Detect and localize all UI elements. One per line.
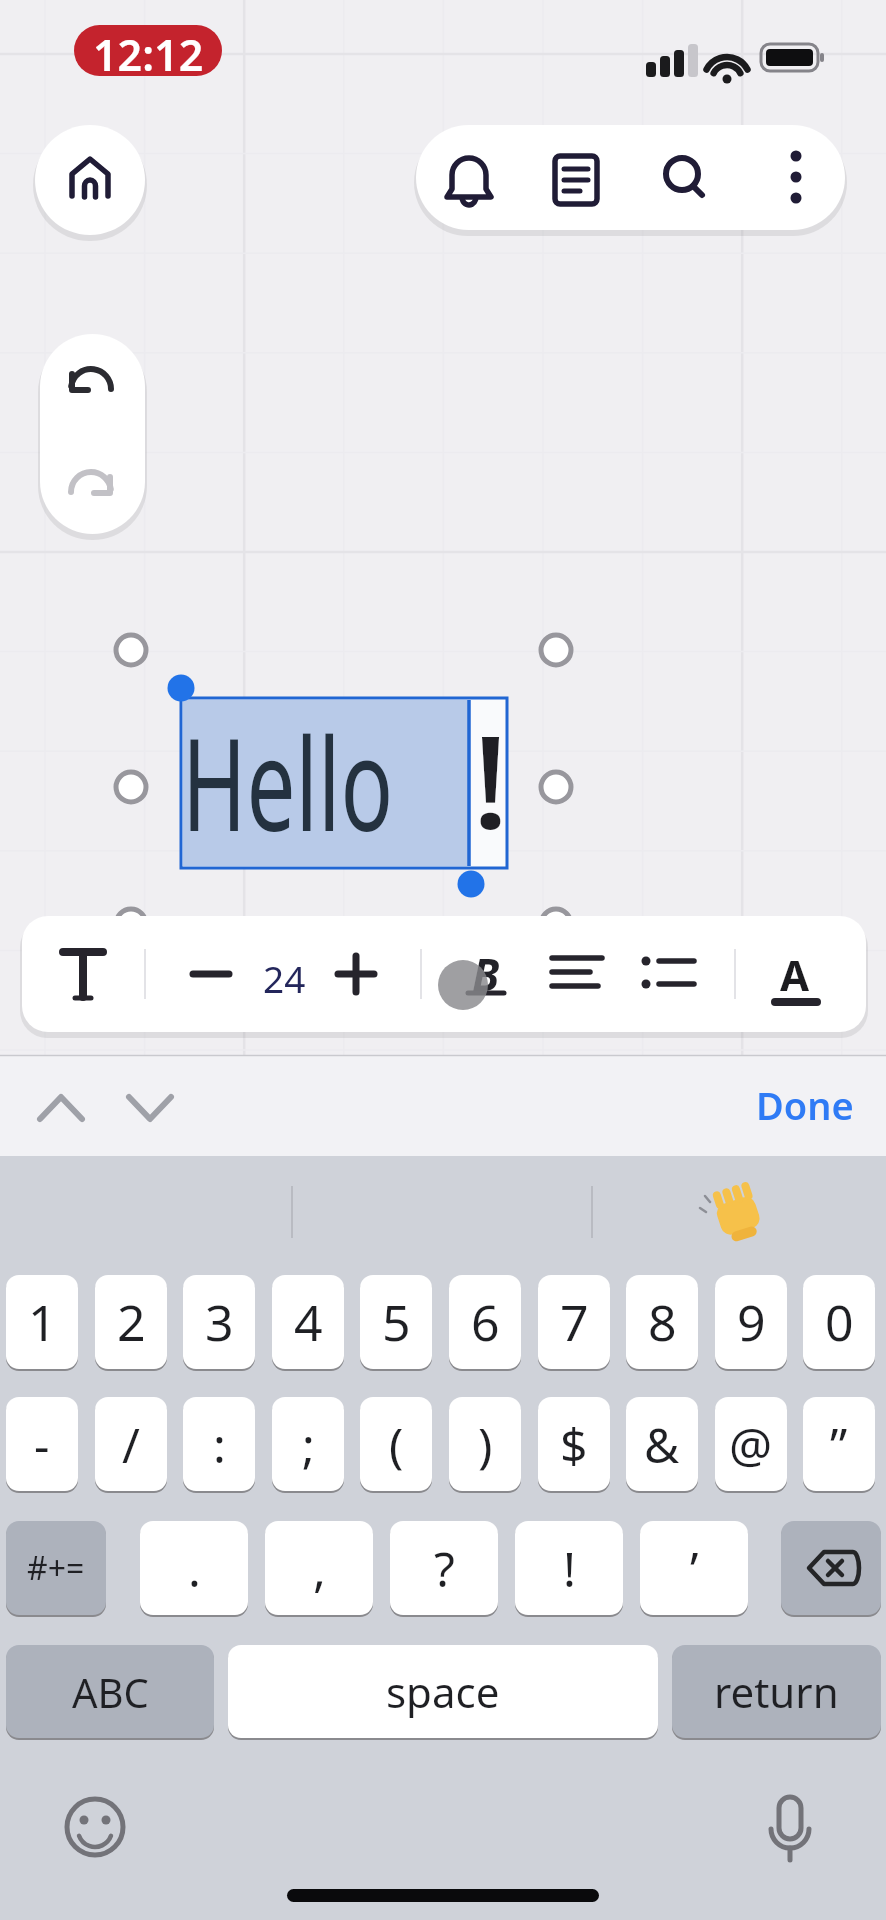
button[interactable] [630, 125, 737, 230]
staticText: ! [563, 1536, 576, 1601]
button[interactable]: 3 [183, 1275, 255, 1369]
button[interactable] [316, 924, 396, 1024]
button[interactable] [781, 1521, 881, 1615]
button[interactable]: 7 [538, 1275, 610, 1369]
button[interactable]: ) [449, 1397, 521, 1491]
button[interactable]: 8 [626, 1275, 698, 1369]
staticText: @ [729, 1412, 773, 1477]
button[interactable] [628, 924, 708, 1024]
staticText: Hello [182, 694, 393, 868]
staticText: 0 [825, 1288, 854, 1356]
button[interactable]: ’ [640, 1521, 748, 1615]
staticText: & [644, 1412, 680, 1477]
button[interactable] [43, 924, 123, 1024]
button[interactable]: 1 [6, 1275, 78, 1369]
button[interactable]: #+= [6, 1521, 106, 1615]
staticText: ’ [690, 1536, 699, 1601]
staticText: #+= [27, 1546, 85, 1590]
staticText: A [780, 946, 810, 1003]
staticText: : [213, 1412, 226, 1477]
staticText: B [472, 944, 500, 1004]
button[interactable] [110, 1065, 195, 1145]
staticText: ) [478, 1412, 493, 1477]
staticText: ” [830, 1412, 848, 1477]
button[interactable]: - [6, 1397, 78, 1491]
staticText: 2 [117, 1288, 146, 1356]
button[interactable]: space [228, 1645, 658, 1738]
staticText: 3 [205, 1288, 234, 1356]
staticText: 6 [471, 1288, 500, 1356]
button[interactable]: 9 [715, 1275, 787, 1369]
button[interactable]: 2 [95, 1275, 167, 1369]
staticText: 4 [294, 1288, 323, 1356]
staticText: 7 [560, 1288, 589, 1356]
button[interactable] [20, 1065, 105, 1145]
button[interactable] [171, 924, 251, 1024]
staticText: ( [389, 1412, 404, 1477]
staticText: 8 [648, 1288, 677, 1356]
staticText: , [313, 1536, 326, 1601]
button[interactable]: 5 [360, 1275, 432, 1369]
button[interactable]: $ [538, 1397, 610, 1491]
staticText: . [188, 1536, 201, 1601]
staticText: ; [302, 1412, 315, 1477]
button[interactable] [40, 434, 145, 534]
button[interactable]: / [95, 1397, 167, 1491]
button[interactable] [523, 125, 630, 230]
button[interactable]: Done [740, 1065, 870, 1145]
button[interactable] [537, 924, 617, 1024]
button[interactable] [757, 924, 837, 1024]
staticText: / [122, 1412, 140, 1477]
staticText: 9 [737, 1288, 766, 1356]
staticText: 12:12 [93, 25, 204, 76]
button[interactable] [737, 125, 844, 230]
staticText: 5 [382, 1288, 411, 1356]
button[interactable]: 4 [272, 1275, 344, 1369]
button[interactable]: @ [715, 1397, 787, 1491]
staticText: - [34, 1412, 50, 1477]
staticText: ? [434, 1536, 455, 1601]
button[interactable]: 0 [803, 1275, 875, 1369]
button[interactable]: ; [272, 1397, 344, 1491]
button[interactable] [750, 1787, 830, 1867]
button[interactable]: ? [390, 1521, 498, 1615]
button[interactable]: : [183, 1397, 255, 1491]
button[interactable]: & [626, 1397, 698, 1491]
staticText: space [386, 1663, 500, 1720]
button[interactable] [416, 125, 523, 230]
staticText: ABC [72, 1665, 149, 1719]
button[interactable]: ( [360, 1397, 432, 1491]
staticText: 1 [28, 1288, 57, 1356]
button[interactable] [40, 334, 145, 434]
button[interactable]: ” [803, 1397, 875, 1491]
button[interactable]: ABC [6, 1645, 214, 1738]
staticText: Done [756, 1079, 854, 1131]
button[interactable]: return [672, 1645, 881, 1738]
button[interactable] [690, 1180, 785, 1250]
staticText: $ [560, 1412, 588, 1477]
button[interactable]: 12:12 [74, 25, 222, 76]
staticText: 24 [263, 953, 306, 1003]
button[interactable]: . [140, 1521, 248, 1615]
button[interactable] [55, 1787, 135, 1867]
button[interactable] [35, 125, 145, 235]
button[interactable]: ! [515, 1521, 623, 1615]
staticText: return [714, 1663, 839, 1720]
button[interactable]: , [265, 1521, 373, 1615]
button[interactable]: 6 [449, 1275, 521, 1369]
button[interactable] [446, 924, 526, 1024]
button[interactable] [181, 698, 507, 868]
staticText: ! [469, 691, 513, 865]
